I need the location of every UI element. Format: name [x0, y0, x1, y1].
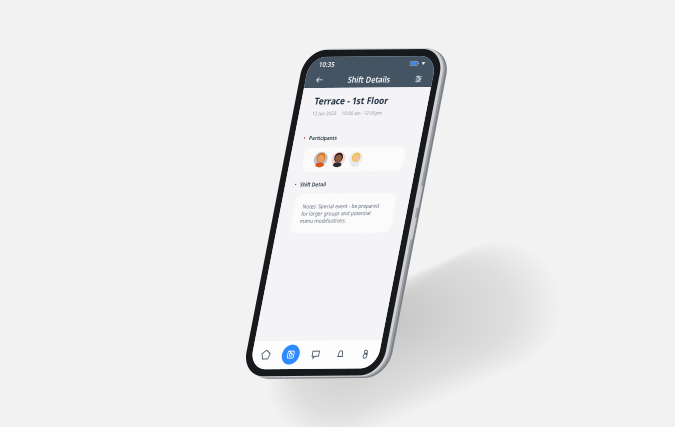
button[interactable]: Filter [328, 43, 366, 81]
